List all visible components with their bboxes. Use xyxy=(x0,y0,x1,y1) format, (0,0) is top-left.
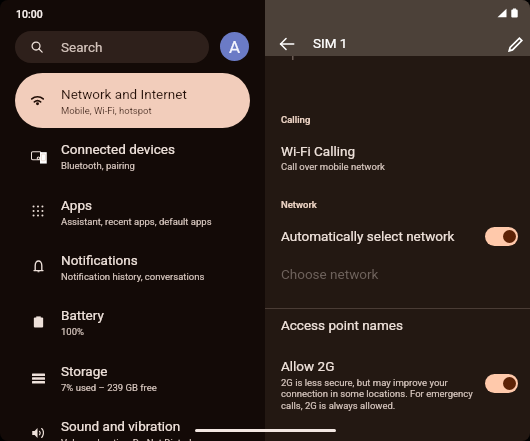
staticText: Storage xyxy=(61,363,108,379)
button[interactable]: Access point names xyxy=(265,312,530,342)
staticText: Notifications xyxy=(61,252,138,268)
staticText: Network and Internet xyxy=(61,86,187,102)
staticText: Bluetooth, pairing xyxy=(61,160,135,171)
staticText: 2G is less secure, but may improve your … xyxy=(281,377,473,412)
button[interactable]: Storage xyxy=(0,350,265,405)
staticText: Apps xyxy=(61,197,92,213)
staticText: Notification history, conversations xyxy=(61,271,205,282)
button[interactable]: Notifications xyxy=(0,239,265,294)
button[interactable]: Allow 2G xyxy=(265,352,530,414)
staticText: Search xyxy=(61,39,103,55)
staticText: Mobile, Wi-Fi, hotspot xyxy=(61,105,152,116)
button[interactable]: Choose network xyxy=(265,261,530,289)
staticText: 10:00 xyxy=(16,8,43,20)
button[interactable]: Wi-Fi Calling xyxy=(265,136,530,180)
button[interactable]: Toggle xyxy=(485,227,518,246)
button[interactable]: Network and Internet xyxy=(15,73,250,128)
staticText: Calling xyxy=(281,114,311,125)
button[interactable]: Sound and vibration xyxy=(0,405,265,441)
staticText: Allow 2G xyxy=(281,358,335,374)
staticText: 100% xyxy=(61,326,84,337)
button[interactable]: Search xyxy=(15,31,209,63)
staticText: Assistant, recent apps, default apps xyxy=(61,216,212,227)
button[interactable]: Back xyxy=(272,29,302,59)
staticText: Call over mobile network xyxy=(281,161,385,172)
button[interactable]: Toggle xyxy=(485,374,518,393)
staticText: Choose network xyxy=(281,266,379,282)
staticText: Volume, haptics, Do Not Disturb xyxy=(61,437,195,441)
staticText: Battery xyxy=(61,307,104,323)
button[interactable]: Account xyxy=(220,32,249,61)
staticText: Network xyxy=(281,199,317,210)
button[interactable]: Apps xyxy=(0,184,265,239)
staticText: Access point names xyxy=(281,317,403,333)
staticText: Connected devices xyxy=(61,141,175,157)
staticText: SIM 1 xyxy=(313,35,348,51)
button[interactable]: Edit xyxy=(500,29,530,59)
button[interactable]: Battery xyxy=(0,294,265,349)
staticText: Sound and vibration xyxy=(61,418,181,434)
button[interactable]: Automatically select network xyxy=(265,222,530,252)
staticText: A xyxy=(229,37,241,57)
staticText: Automatically select network xyxy=(281,228,455,244)
staticText: Wi-Fi Calling xyxy=(281,143,356,159)
button[interactable]: Connected devices xyxy=(0,128,265,183)
staticText: 7% used – 239 GB free xyxy=(61,382,157,393)
